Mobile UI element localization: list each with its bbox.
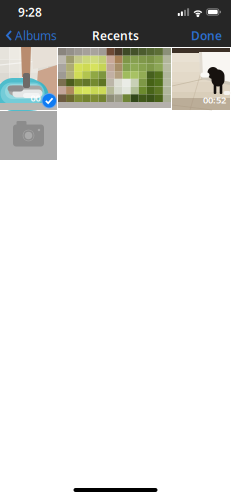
button[interactable]: Albums — [0, 24, 63, 47]
staticText: 9:28 — [18, 4, 42, 20]
button[interactable] — [58, 48, 171, 102]
button[interactable]: Done — [185, 24, 231, 47]
staticText: Done — [191, 27, 222, 43]
staticText: 00:52 — [203, 94, 226, 106]
button[interactable]: 00:52 — [172, 48, 230, 110]
button[interactable]: 00 — [0, 47, 57, 110]
staticText: 00 — [30, 92, 40, 104]
staticText: Albums — [15, 27, 57, 43]
staticText: Recents — [92, 27, 139, 43]
button[interactable]: Take photo — [0, 111, 57, 160]
